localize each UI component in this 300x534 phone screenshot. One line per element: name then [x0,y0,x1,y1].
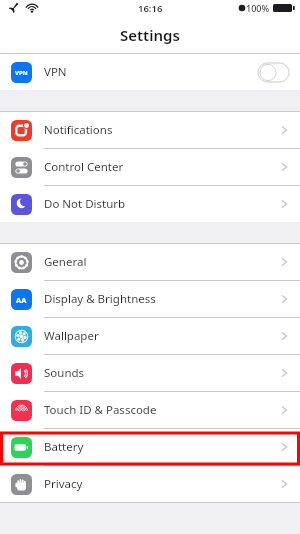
staticText: Sounds [44,365,85,381]
button[interactable]: Sounds [0,355,300,391]
button[interactable]: Wallpaper [0,318,300,354]
staticText: 16:16 [138,2,163,15]
button[interactable]: Privacy [0,466,300,502]
button[interactable]: Control Center [0,149,300,185]
staticText: Touch ID & Passcode [44,402,157,418]
staticText: VPN [15,69,28,77]
staticText: 100% [246,2,270,14]
staticText: Display & Brightness [44,291,156,307]
staticText: Privacy [44,476,83,492]
staticText: Do Not Disturb [44,196,126,212]
button[interactable]: VPN [0,54,300,90]
staticText: Wallpaper [44,328,99,344]
staticText: VPN [44,64,67,80]
staticText: AA [16,295,27,305]
button[interactable]: Notifications [0,112,300,148]
staticText: General [44,254,87,270]
staticText: Control Center [44,159,124,175]
button[interactable]: AA [0,281,300,317]
staticText: Notifications [44,122,113,138]
staticText: Settings [120,25,180,45]
staticText: Battery [44,439,84,455]
button[interactable]: Do Not Disturb [0,186,300,222]
button[interactable]: Battery [0,429,300,465]
button[interactable]: General [0,244,300,280]
button[interactable]: Touch ID & Passcode [0,392,300,428]
